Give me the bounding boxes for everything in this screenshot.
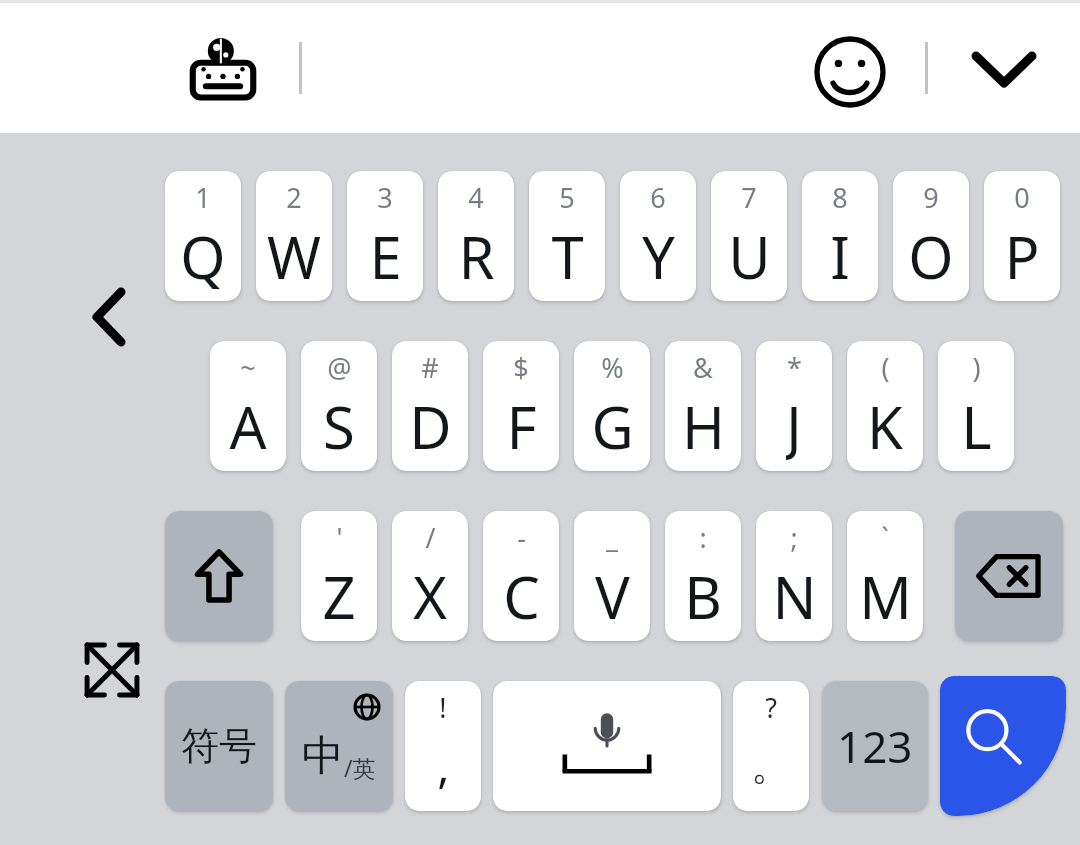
- staticText: D: [409, 387, 452, 463]
- button[interactable]: :: [665, 511, 741, 641]
- button[interactable]: Search: [940, 676, 1066, 816]
- button[interactable]: -: [483, 511, 559, 641]
- staticText: ;: [790, 519, 798, 555]
- staticText: _: [606, 519, 618, 555]
- staticText: 0: [1014, 179, 1030, 215]
- staticText: !: [439, 689, 447, 725]
- staticText: $: [513, 349, 529, 385]
- staticText: L: [961, 387, 992, 463]
- button[interactable]: Shift: [165, 511, 273, 641]
- staticText: Z: [322, 557, 356, 633]
- staticText: `: [881, 519, 889, 555]
- button[interactable]: Hide keyboard: [958, 34, 1050, 106]
- staticText: @: [327, 349, 352, 385]
- staticText: (: [881, 349, 890, 385]
- button[interactable]: Previous: [74, 282, 144, 352]
- button[interactable]: &: [665, 341, 741, 471]
- staticText: I: [830, 217, 850, 293]
- staticText: R: [458, 217, 495, 293]
- staticText: &: [693, 349, 713, 385]
- button[interactable]: _: [574, 511, 650, 641]
- button[interactable]: 1: [165, 171, 241, 301]
- button[interactable]: 7: [711, 171, 787, 301]
- staticText: 9: [923, 179, 939, 215]
- button[interactable]: `: [847, 511, 923, 641]
- staticText: W: [267, 217, 321, 293]
- button[interactable]: ;: [756, 511, 832, 641]
- staticText: F: [506, 387, 537, 463]
- button[interactable]: ?: [733, 681, 809, 811]
- button[interactable]: 2: [256, 171, 332, 301]
- staticText: 5: [559, 179, 575, 215]
- button[interactable]: @: [301, 341, 377, 471]
- staticText: 7: [741, 179, 757, 215]
- staticText: ): [972, 349, 981, 385]
- staticText: 2: [286, 179, 302, 215]
- button[interactable]: Resize keyboard: [76, 634, 148, 706]
- button[interactable]: 6: [620, 171, 696, 301]
- button[interactable]: Backspace: [955, 511, 1063, 641]
- button[interactable]: *: [756, 341, 832, 471]
- staticText: O: [908, 217, 954, 293]
- staticText: -: [517, 519, 526, 555]
- staticText: *: [787, 349, 802, 385]
- staticText: Y: [642, 217, 675, 293]
- staticText: /: [425, 519, 436, 555]
- button[interactable]: Switch input language: [180, 36, 266, 102]
- staticText: P: [1004, 217, 1040, 293]
- staticText: 123: [837, 716, 913, 776]
- staticText: 。: [751, 740, 791, 790]
- staticText: T: [551, 217, 584, 293]
- button[interactable]: ): [938, 341, 1014, 471]
- staticText: X: [413, 557, 447, 633]
- button[interactable]: 9: [893, 171, 969, 301]
- button[interactable]: 123: [822, 681, 928, 811]
- staticText: J: [786, 387, 802, 463]
- button[interactable]: ': [301, 511, 377, 641]
- staticText: A: [229, 387, 267, 463]
- staticText: N: [772, 557, 817, 633]
- staticText: K: [867, 387, 903, 463]
- button[interactable]: 中: [285, 681, 393, 811]
- staticText: 1: [195, 179, 211, 215]
- staticText: Q: [180, 217, 226, 293]
- button[interactable]: %: [574, 341, 650, 471]
- button[interactable]: Emoji: [806, 28, 894, 116]
- button[interactable]: $: [483, 341, 559, 471]
- staticText: U: [728, 217, 771, 293]
- staticText: S: [323, 387, 355, 463]
- staticText: B: [684, 557, 722, 633]
- button[interactable]: 5: [529, 171, 605, 301]
- button[interactable]: (: [847, 341, 923, 471]
- staticText: M: [859, 557, 912, 633]
- button[interactable]: 符号: [165, 681, 273, 811]
- staticText: :: [699, 519, 707, 555]
- staticText: 3: [377, 179, 393, 215]
- staticText: ~: [240, 349, 256, 385]
- staticText: V: [595, 557, 630, 633]
- button[interactable]: /: [392, 511, 468, 641]
- button[interactable]: Space: [493, 681, 721, 811]
- staticText: ?: [765, 689, 777, 725]
- button[interactable]: 3: [347, 171, 423, 301]
- button[interactable]: 4: [438, 171, 514, 301]
- staticText: C: [503, 557, 540, 633]
- staticText: ,: [437, 734, 450, 797]
- button[interactable]: #: [392, 341, 468, 471]
- staticText: G: [591, 387, 634, 463]
- button[interactable]: 0: [984, 171, 1060, 301]
- staticText: 6: [650, 179, 666, 215]
- staticText: %: [601, 349, 624, 385]
- staticText: E: [369, 217, 402, 293]
- button[interactable]: 8: [802, 171, 878, 301]
- staticText: 中: [302, 730, 344, 783]
- staticText: 4: [468, 179, 484, 215]
- button[interactable]: !: [405, 681, 481, 811]
- staticText: /英: [344, 752, 376, 783]
- staticText: 符号: [181, 722, 257, 770]
- staticText: ': [336, 519, 343, 555]
- button[interactable]: ~: [210, 341, 286, 471]
- staticText: 8: [832, 179, 848, 215]
- staticText: #: [421, 349, 439, 385]
- staticText: H: [682, 387, 725, 463]
